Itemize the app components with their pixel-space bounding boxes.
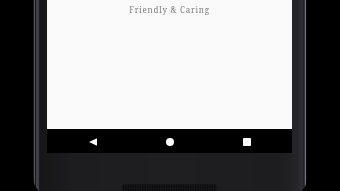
button[interactable]: Recent apps — [235, 130, 259, 154]
button[interactable]: Back — [81, 130, 105, 154]
button[interactable]: Home — [158, 130, 182, 154]
staticText: Friendly & Caring — [47, 4, 292, 15]
